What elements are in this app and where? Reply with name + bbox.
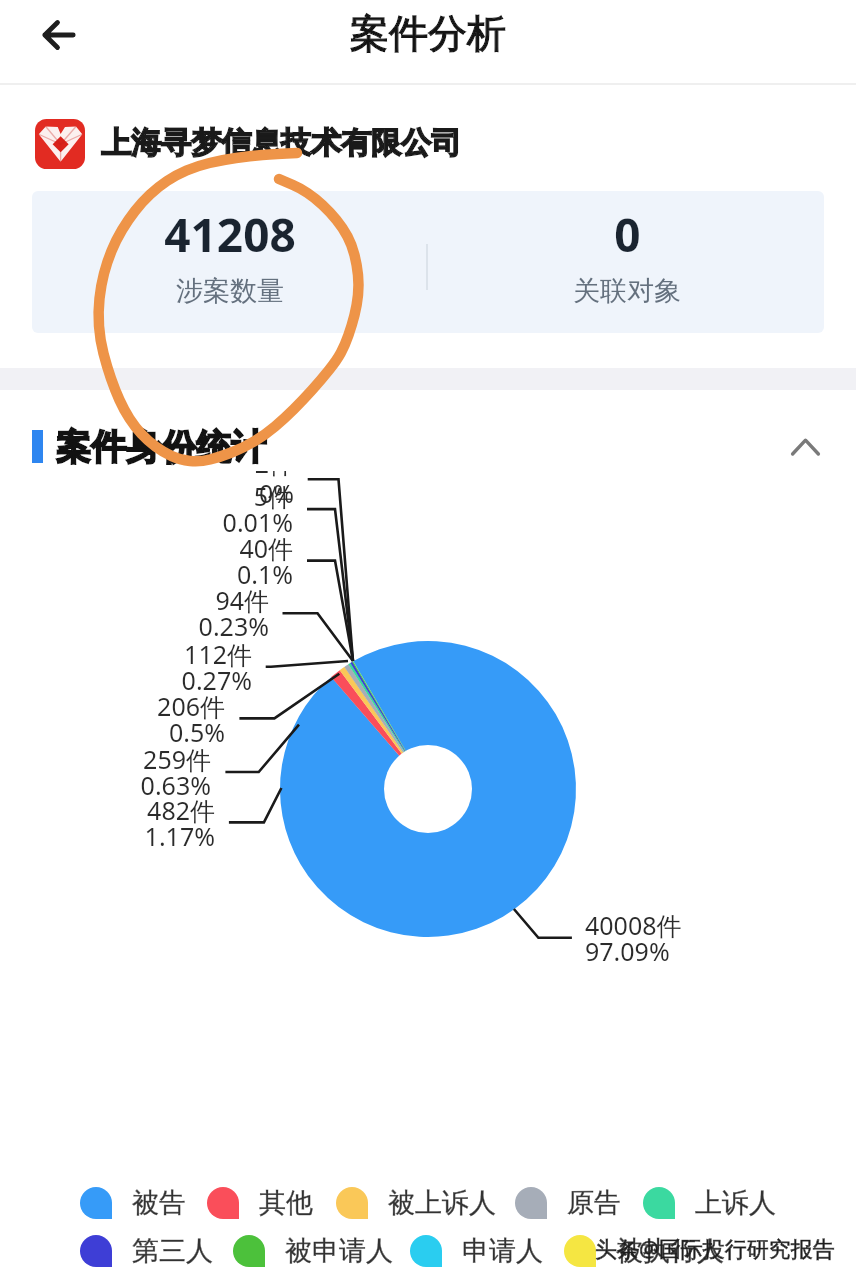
staticText: 0: [614, 203, 641, 266]
staticText: 上海寻梦信息技术有限公司: [101, 124, 461, 162]
staticText: 被申请人: [285, 1234, 393, 1268]
staticText: 上诉人: [695, 1186, 776, 1220]
staticText: 482件: [147, 793, 215, 827]
staticText: 被告: [132, 1186, 186, 1220]
staticText: 案件身份统计: [56, 425, 266, 469]
staticText: 第三人: [132, 1234, 213, 1268]
button[interactable]: Back: [12, 4, 106, 66]
button[interactable]: [233, 1228, 393, 1274]
staticText: 关联对象: [573, 274, 681, 308]
button[interactable]: [564, 1228, 724, 1274]
staticText: 259件: [143, 742, 211, 776]
staticText: 原告: [567, 1186, 621, 1220]
staticText: 40件: [239, 531, 293, 565]
staticText: 申请人: [462, 1234, 543, 1268]
staticText: 其他: [259, 1186, 313, 1220]
staticText: 0.63%: [140, 768, 211, 802]
button[interactable]: [410, 1228, 543, 1274]
staticText: 被上诉人: [388, 1186, 496, 1220]
staticText: 0.01%: [222, 505, 293, 539]
staticText: 申请人: [462, 1234, 543, 1268]
staticText: 被执行人: [616, 1234, 724, 1268]
staticText: 被告: [132, 1186, 186, 1220]
staticText: 案件分析: [350, 9, 506, 58]
staticText: 2件: [254, 471, 294, 480]
staticText: 头条@国际投行研究报告: [595, 1233, 835, 1263]
staticText: 涉案数量: [176, 274, 284, 308]
button[interactable]: [32, 191, 428, 333]
staticText: 0.27%: [181, 663, 252, 697]
staticText: 头条@国际投行研究报告: [595, 1233, 835, 1263]
staticText: 其他: [259, 1186, 313, 1220]
button[interactable]: [643, 1180, 776, 1226]
staticText: 94件: [215, 583, 269, 617]
button[interactable]: [336, 1180, 496, 1226]
staticText: 1.17%: [144, 819, 215, 853]
button[interactable]: [515, 1180, 621, 1226]
staticText: 206件: [157, 689, 225, 723]
staticText: 0.1%: [236, 557, 293, 591]
staticText: 0.23%: [198, 609, 269, 643]
staticText: 上诉人: [695, 1186, 776, 1220]
staticText: 0.5%: [168, 715, 225, 749]
button[interactable]: [207, 1180, 313, 1226]
button[interactable]: Collapse section: [770, 415, 842, 477]
staticText: 41208: [164, 203, 296, 266]
staticText: 案件身份统计: [56, 425, 266, 469]
staticText: 5件: [253, 479, 293, 513]
button[interactable]: [80, 1180, 186, 1226]
staticText: 0%: [258, 476, 294, 510]
staticText: 第三人: [132, 1234, 213, 1268]
staticText: 原告: [567, 1186, 621, 1220]
staticText: 案件分析: [350, 9, 506, 58]
staticText: 97.09%: [585, 934, 670, 968]
staticText: 被上诉人: [388, 1186, 496, 1220]
staticText: 上海寻梦信息技术有限公司: [101, 124, 461, 162]
button[interactable]: [80, 1228, 213, 1274]
staticText: 被申请人: [285, 1234, 393, 1268]
staticText: 40008件: [585, 908, 682, 942]
button[interactable]: [428, 191, 824, 333]
staticText: 被执行人: [616, 1234, 724, 1268]
staticText: 112件: [184, 637, 252, 671]
